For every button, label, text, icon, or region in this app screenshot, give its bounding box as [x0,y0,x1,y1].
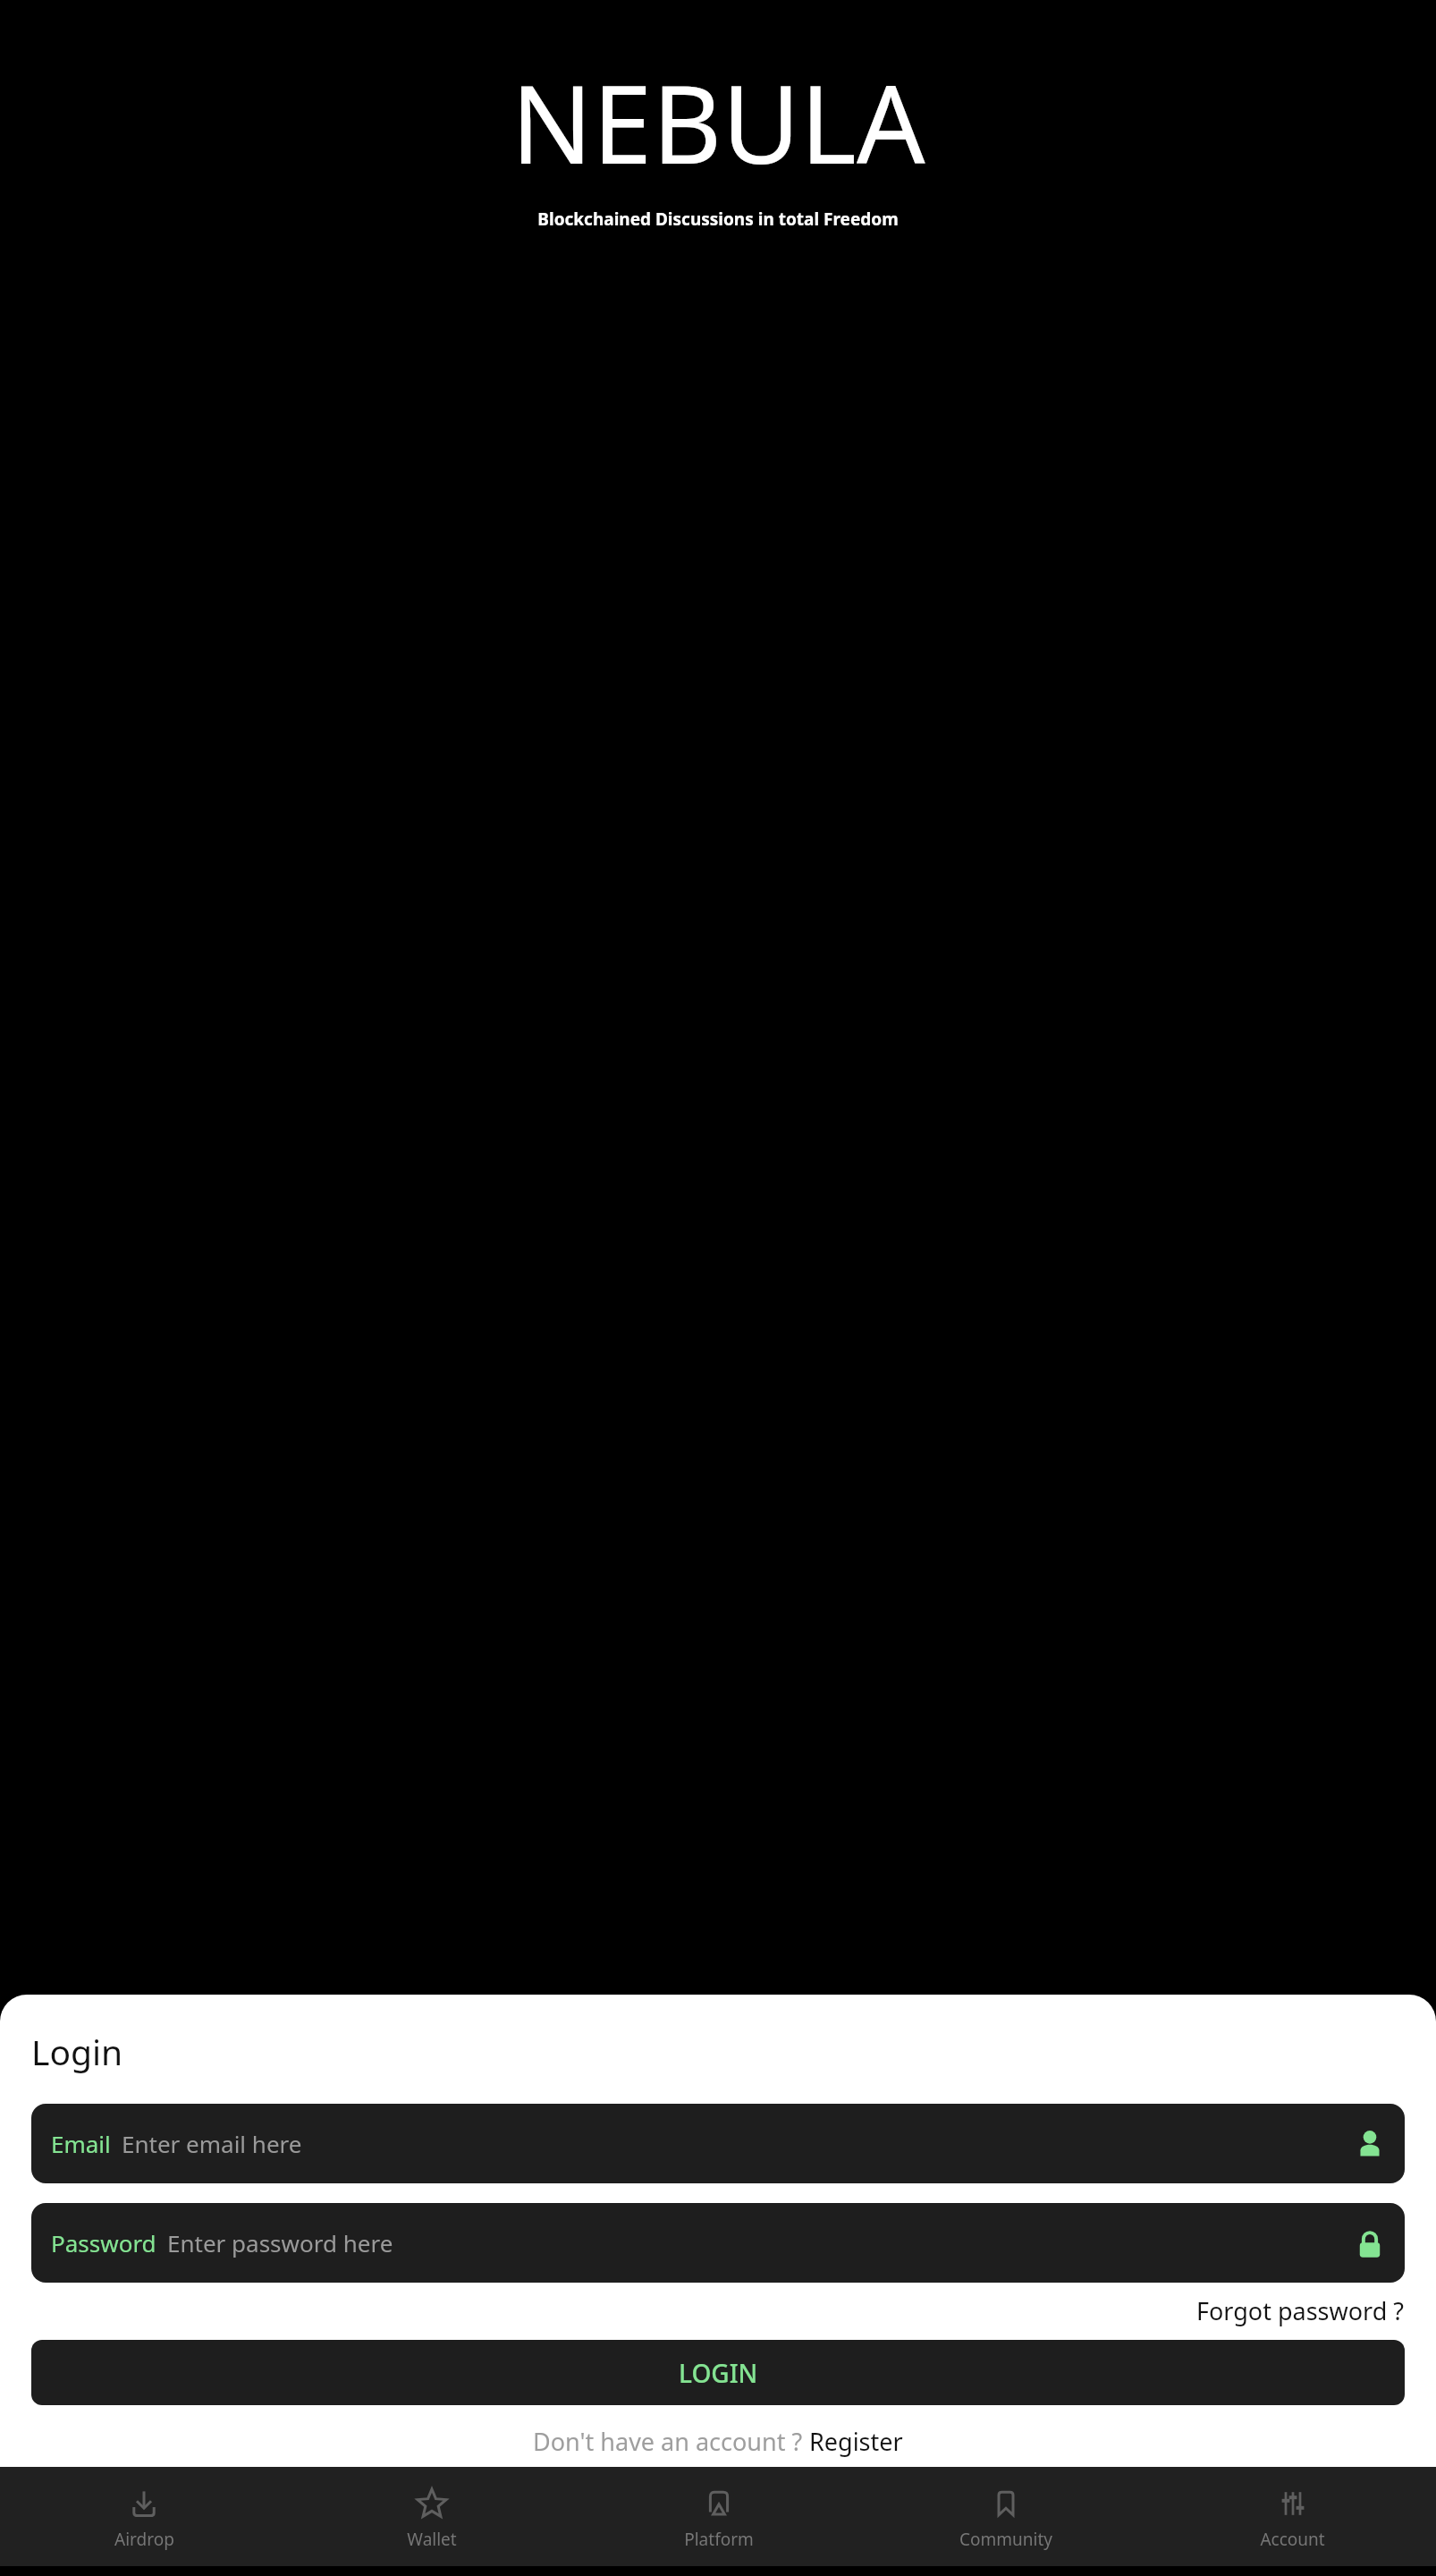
staticText: Blockchained Discussions in total Freedo… [537,208,899,231]
button[interactable]: Account [1149,2473,1436,2560]
staticText: Airdrop [114,2528,174,2551]
button[interactable]: Forgot password ? [1196,2294,1405,2327]
button[interactable]: Airdrop [0,2473,288,2560]
button[interactable]: Community [862,2473,1149,2560]
staticText: LOGIN [679,2356,758,2390]
staticText: NEBULA [511,49,925,195]
button[interactable]: LOGIN [31,2340,1405,2405]
staticText: Login [31,2028,123,2075]
staticText: Enter email here [122,2128,302,2159]
button[interactable]: Email [31,2104,1405,2183]
staticText: Password [51,2227,156,2258]
staticText: Platform [684,2528,754,2551]
staticText: Community [959,2528,1052,2551]
staticText: Email [51,2128,111,2159]
staticText: Wallet [407,2528,457,2551]
staticText: Don't have an account ? [533,2425,809,2458]
button[interactable]: Platform [575,2473,862,2560]
staticText: Account [1260,2528,1325,2551]
staticText: Register [809,2425,903,2458]
staticText: Enter password here [167,2227,393,2258]
button[interactable]: Password [31,2203,1405,2283]
button[interactable]: Wallet [288,2473,575,2560]
staticText: Forgot password ? [1196,2294,1405,2327]
button[interactable]: Register [809,2425,903,2458]
